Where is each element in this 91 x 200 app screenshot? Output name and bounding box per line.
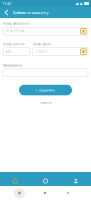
- button[interactable]: Back: [2, 7, 11, 18]
- staticText: 123А567: [35, 50, 49, 53]
- button[interactable]: Recent apps: [14, 187, 25, 198]
- staticText: Номер автомобиля: [3, 22, 30, 25]
- button[interactable]: Home: [39, 187, 50, 198]
- staticText: Номер кузова: [32, 42, 50, 46]
- button[interactable]: Back: [62, 187, 73, 198]
- staticText: О0 А 000 АА: [5, 29, 24, 33]
- staticText: Номер региона: [3, 42, 24, 46]
- button[interactable]: Сохранить: [19, 85, 72, 95]
- staticText: Марка машины: [3, 64, 22, 67]
- staticText: Сохранить: [36, 87, 55, 93]
- staticText: Добавить машину: [12, 10, 48, 15]
- button[interactable]: Map: [30, 172, 61, 185]
- button[interactable]: Отменить: [3, 99, 88, 106]
- button[interactable]: Profile: [61, 172, 91, 185]
- staticText: 11:42: [2, 1, 11, 6]
- staticText: ААА: [5, 50, 11, 53]
- button[interactable]: Home: [0, 172, 30, 185]
- staticText: Отменить: [39, 101, 51, 104]
